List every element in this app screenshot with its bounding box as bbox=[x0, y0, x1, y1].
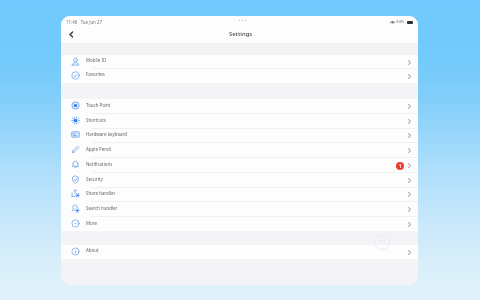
staticText: Share handler bbox=[86, 190, 116, 196]
button[interactable]: Touch Point bbox=[61, 99, 418, 114]
button[interactable]: Mobile ID bbox=[61, 55, 418, 69]
button[interactable]: About bbox=[61, 245, 418, 259]
button[interactable]: Notifications bbox=[61, 158, 418, 173]
button[interactable]: Search handler bbox=[61, 202, 418, 217]
button[interactable]: More bbox=[61, 217, 418, 232]
staticText: Settings bbox=[229, 30, 253, 38]
button[interactable]: Hardware keyboard bbox=[61, 128, 418, 143]
staticText: Favorites bbox=[86, 71, 105, 77]
staticText: 11:46 Tue Jun 27 bbox=[66, 19, 102, 25]
staticText: Security bbox=[86, 176, 103, 182]
button[interactable]: Favorites bbox=[61, 69, 418, 83]
staticText: Mobile ID bbox=[86, 57, 107, 63]
button[interactable]: Shortcuts bbox=[61, 114, 418, 129]
staticText: About bbox=[86, 247, 99, 253]
staticText: Search handler bbox=[86, 205, 118, 211]
button[interactable]: Apple Pencil bbox=[61, 143, 418, 158]
button[interactable]: Back bbox=[64, 27, 78, 41]
staticText: Touch Point bbox=[86, 102, 111, 108]
staticText: 94% bbox=[396, 19, 405, 25]
staticText: 77 bbox=[379, 238, 386, 246]
staticText: Notifications bbox=[86, 161, 113, 167]
button[interactable]: Share handler bbox=[61, 187, 418, 202]
staticText: 1 bbox=[399, 163, 402, 169]
staticText: More bbox=[86, 220, 97, 226]
staticText: Shortcuts bbox=[86, 117, 106, 123]
staticText: Hardware keyboard bbox=[86, 131, 128, 137]
staticText: Apple Pencil bbox=[86, 146, 112, 152]
button[interactable]: Security bbox=[61, 173, 418, 188]
